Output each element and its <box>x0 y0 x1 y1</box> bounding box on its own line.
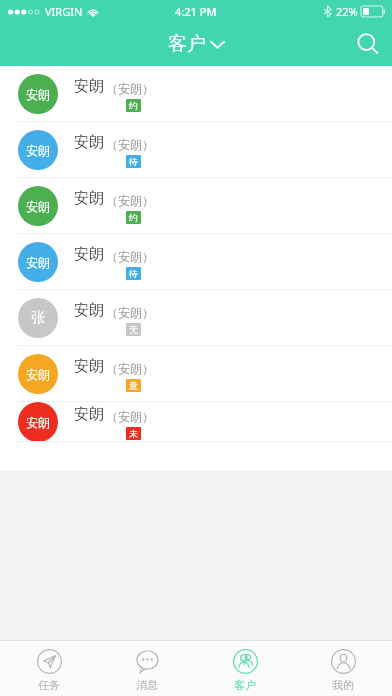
button[interactable]: 安朗 <box>0 122 392 178</box>
staticText: 安朗 <box>74 245 104 264</box>
button[interactable]: 安朗 <box>0 66 392 122</box>
button[interactable]: 安朗 <box>0 234 392 290</box>
button[interactable]: 客户 <box>196 641 294 696</box>
staticText: （安朗） <box>106 305 154 320</box>
staticText: 安朗 <box>26 143 50 158</box>
staticText: 安朗 <box>74 133 104 152</box>
staticText: VIRGIN <box>45 4 83 19</box>
button[interactable]: 消息 <box>98 641 196 696</box>
staticText: 意 <box>129 380 138 391</box>
staticText: 消息 <box>136 678 158 692</box>
button[interactable]: 任务 <box>0 641 98 696</box>
staticText: 安朗 <box>26 87 50 102</box>
staticText: 约 <box>129 212 138 223</box>
staticText: 安朗 <box>26 255 50 270</box>
button[interactable]: 我的 <box>294 641 392 696</box>
staticText: 无 <box>129 324 138 335</box>
staticText: 22% <box>336 4 358 19</box>
staticText: （安朗） <box>106 137 154 152</box>
staticText: 客户 <box>168 32 206 56</box>
button[interactable]: 安朗 <box>0 178 392 234</box>
button[interactable]: 客户 <box>160 28 232 60</box>
staticText: （安朗） <box>106 81 154 96</box>
staticText: 安朗 <box>74 77 104 96</box>
button[interactable]: 张 <box>0 290 392 346</box>
button[interactable]: 安朗 <box>0 346 392 402</box>
staticText: 安朗 <box>74 189 104 208</box>
staticText: 安朗 <box>74 357 104 376</box>
staticText: 待 <box>129 268 138 279</box>
staticText: 安朗 <box>26 199 50 214</box>
staticText: 任务 <box>38 678 60 692</box>
staticText: XXX名单已被客户收回 <box>39 72 157 88</box>
staticText: 安朗 <box>26 415 50 430</box>
staticText: 我的 <box>332 678 354 692</box>
staticText: 安朗 <box>26 367 50 382</box>
staticText: 安朗 <box>74 405 104 424</box>
staticText: 4:21 PM <box>175 4 217 19</box>
button[interactable]: Search <box>344 22 392 66</box>
staticText: 未 <box>129 428 138 439</box>
staticText: 约 <box>129 100 138 111</box>
staticText: 客户 <box>234 678 256 692</box>
staticText: （安朗） <box>106 361 154 376</box>
staticText: 安朗 <box>74 301 104 320</box>
staticText: （安朗） <box>106 409 154 424</box>
staticText: （安朗） <box>106 249 154 264</box>
staticText: 待 <box>129 156 138 167</box>
button[interactable]: 安朗 <box>0 402 392 442</box>
staticText: （安朗） <box>106 193 154 208</box>
staticText: 张 <box>31 309 45 327</box>
